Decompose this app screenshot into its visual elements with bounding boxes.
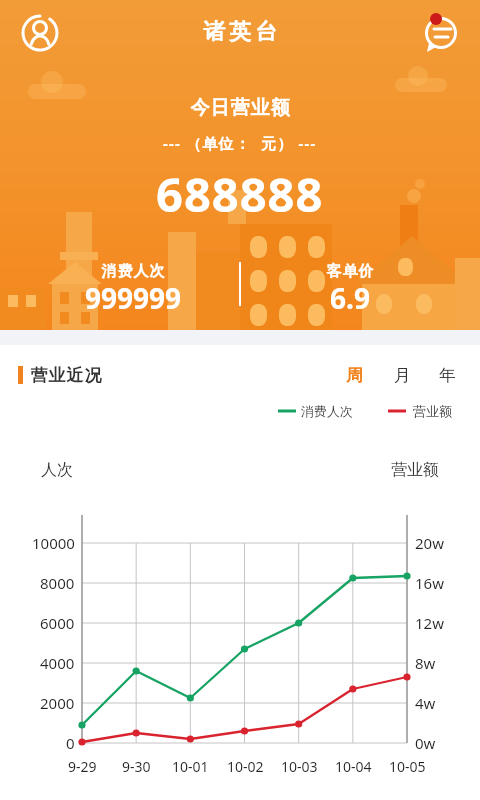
staticText: 9-29 <box>68 757 97 776</box>
staticText: 20w <box>415 533 444 553</box>
button[interactable]: 年 <box>427 355 467 395</box>
staticText: 4w <box>415 693 436 713</box>
staticText: 6000 <box>40 613 75 633</box>
staticText: 消费人次 <box>101 262 165 281</box>
staticText: 4000 <box>40 653 75 673</box>
staticText: 9-30 <box>122 757 151 776</box>
button[interactable] <box>421 13 461 53</box>
button[interactable] <box>20 13 60 53</box>
button[interactable]: 月 <box>382 355 422 395</box>
staticText: 2000 <box>40 693 75 713</box>
staticText: 月 <box>394 365 411 386</box>
staticText: 诸英台 <box>201 18 279 46</box>
staticText: 0 <box>66 733 75 753</box>
staticText: 8w <box>415 653 436 673</box>
staticText: 10000 <box>32 533 75 553</box>
staticText: 营业额 <box>413 403 452 419</box>
staticText: --- （单位： 元） --- <box>163 133 317 153</box>
staticText: 今日营业额 <box>190 96 290 120</box>
staticText: 16w <box>415 573 444 593</box>
staticText: 10-05 <box>389 757 426 776</box>
staticText: 10-02 <box>227 757 264 776</box>
staticText: 年 <box>439 365 456 386</box>
staticText: 10-03 <box>281 757 318 776</box>
staticText: 999999 <box>85 279 182 317</box>
staticText: 客单价 <box>326 262 374 281</box>
staticText: 营业近况 <box>30 365 102 386</box>
staticText: 12w <box>415 613 444 633</box>
staticText: 消费人次 <box>301 403 353 419</box>
staticText: 688888 <box>156 162 324 222</box>
button[interactable]: 周 <box>334 355 374 395</box>
staticText: 10-04 <box>335 757 372 776</box>
staticText: 10-01 <box>172 757 209 776</box>
staticText: 6.9 <box>330 279 370 317</box>
staticText: 周 <box>346 365 363 386</box>
staticText: 8000 <box>40 573 75 593</box>
staticText: 人次 <box>41 460 73 480</box>
staticText: 营业额 <box>391 460 439 480</box>
staticText: 0w <box>415 733 436 753</box>
